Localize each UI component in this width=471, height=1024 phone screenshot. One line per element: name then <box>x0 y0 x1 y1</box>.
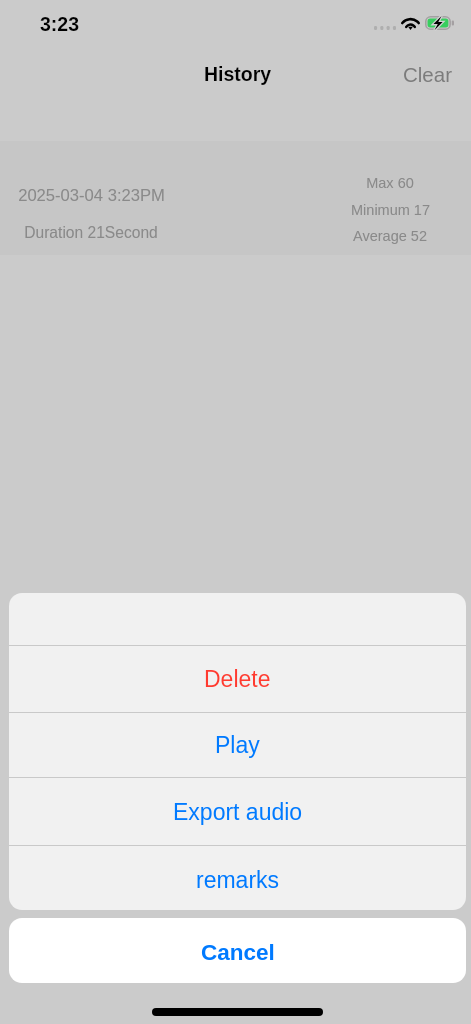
staticText: Max 60 <box>366 175 414 191</box>
other: Wi-Fi <box>401 17 420 30</box>
staticText: History <box>204 63 272 85</box>
button[interactable]: remarks <box>9 846 466 910</box>
staticText: Delete <box>204 666 271 692</box>
other: Battery charging <box>425 16 455 30</box>
button[interactable]: Delete <box>9 646 466 712</box>
button[interactable]: 2025-03-04 3:23PM <box>0 141 471 255</box>
button[interactable]: Play <box>9 713 466 777</box>
button[interactable]: History <box>194 59 282 89</box>
staticText: Duration 21Second <box>24 224 158 241</box>
staticText: 3:23 <box>40 13 80 35</box>
staticText: Clear <box>403 63 452 86</box>
button[interactable]: Clear <box>384 58 471 91</box>
staticText: Play <box>215 732 260 758</box>
button[interactable]: Export audio <box>9 778 466 845</box>
staticText: remarks <box>196 867 280 893</box>
staticText: 2025-03-04 3:23PM <box>18 186 165 205</box>
staticText: Average 52 <box>353 228 427 244</box>
staticText: Minimum 17 <box>351 202 430 218</box>
staticText: Cancel <box>201 940 275 965</box>
staticText: Export audio <box>173 799 303 825</box>
other: Cellular signal <box>374 26 396 30</box>
button[interactable]: Cancel <box>9 918 466 983</box>
